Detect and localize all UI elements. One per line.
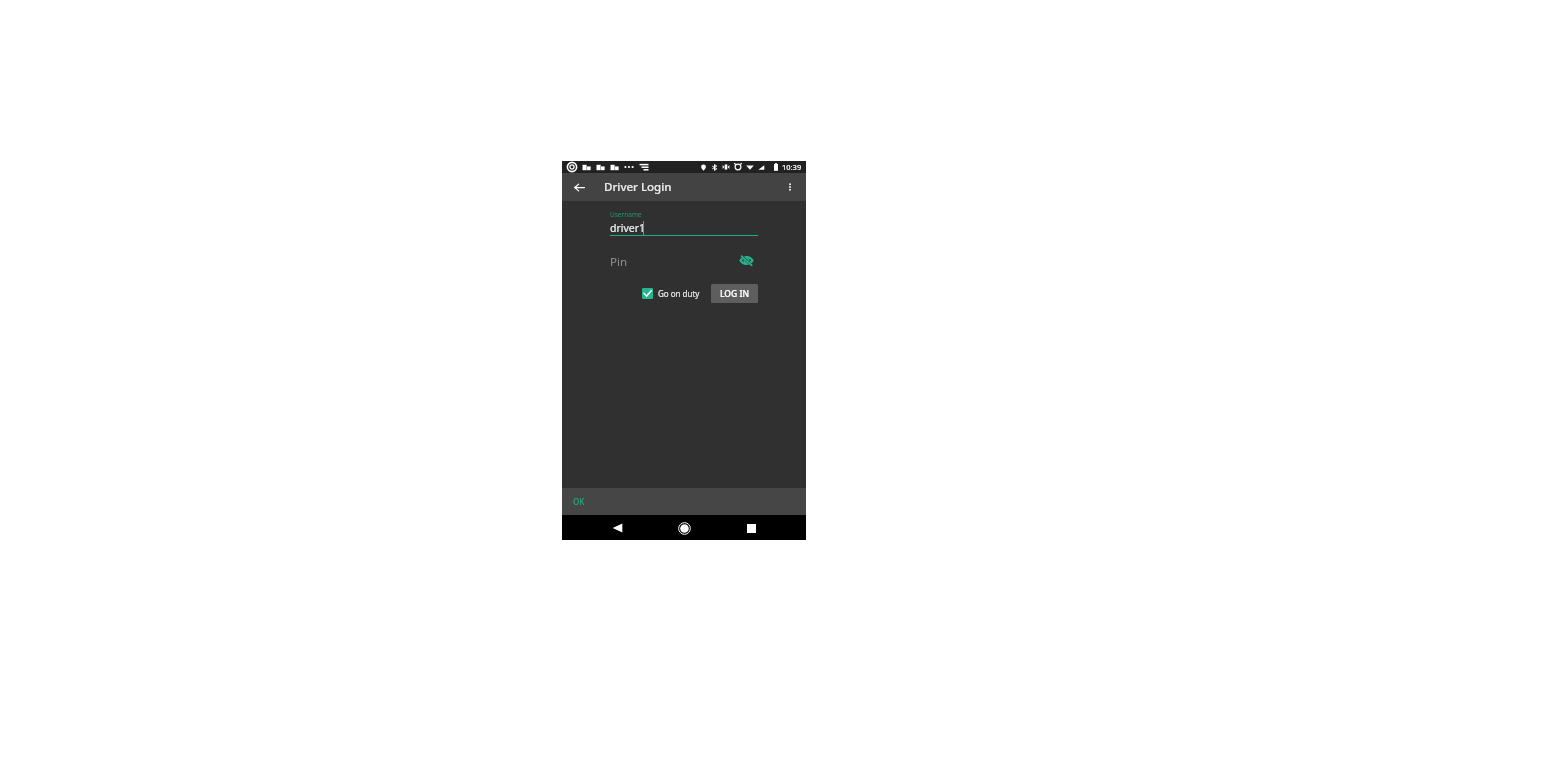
staticText: Driver Login	[604, 179, 672, 195]
button[interactable]: Back	[605, 516, 629, 540]
staticText: Go on duty	[658, 288, 700, 299]
button[interactable]: Username	[610, 210, 758, 236]
staticText: Username	[610, 210, 642, 219]
button[interactable]: OK	[573, 496, 585, 507]
staticText: OK	[573, 496, 585, 507]
button[interactable]: Home	[672, 516, 696, 540]
button[interactable]: Recent apps	[739, 516, 763, 540]
button[interactable]: LOG IN	[711, 284, 758, 303]
staticText: 10:39	[782, 162, 802, 172]
button[interactable]: More options	[780, 177, 800, 197]
button[interactable]: Pin	[610, 254, 740, 267]
button[interactable]: Go on duty	[642, 288, 700, 299]
staticText: Pin	[610, 254, 628, 267]
button[interactable]: Toggle pin visibility	[740, 254, 753, 267]
button[interactable]: Back	[568, 176, 590, 198]
staticText: LOG IN	[720, 288, 750, 300]
staticText: driver1	[610, 221, 646, 235]
